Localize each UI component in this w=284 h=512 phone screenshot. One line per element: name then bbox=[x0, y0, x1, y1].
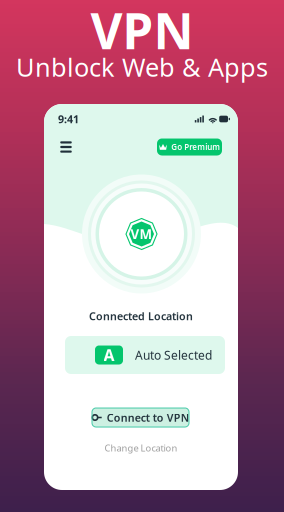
staticText: Auto Selected bbox=[135, 347, 212, 363]
button[interactable]: Connect to VPN bbox=[92, 408, 189, 427]
staticText: Connect to VPN bbox=[107, 410, 189, 425]
staticText: VM bbox=[130, 225, 152, 243]
staticText: VPN bbox=[90, 0, 193, 63]
staticText: Change Location bbox=[104, 442, 177, 454]
staticText: Connected Location bbox=[89, 309, 193, 323]
button[interactable]: Go Premium bbox=[157, 138, 222, 155]
staticText: A bbox=[103, 344, 114, 366]
staticText: Go Premium bbox=[171, 142, 220, 152]
staticText: 9:41 bbox=[58, 112, 79, 126]
button[interactable]: Menu bbox=[57, 138, 75, 156]
staticText: Unblock Web & Apps bbox=[16, 50, 268, 84]
button[interactable]: Change Location bbox=[44, 442, 238, 454]
button[interactable]: A bbox=[65, 336, 225, 374]
